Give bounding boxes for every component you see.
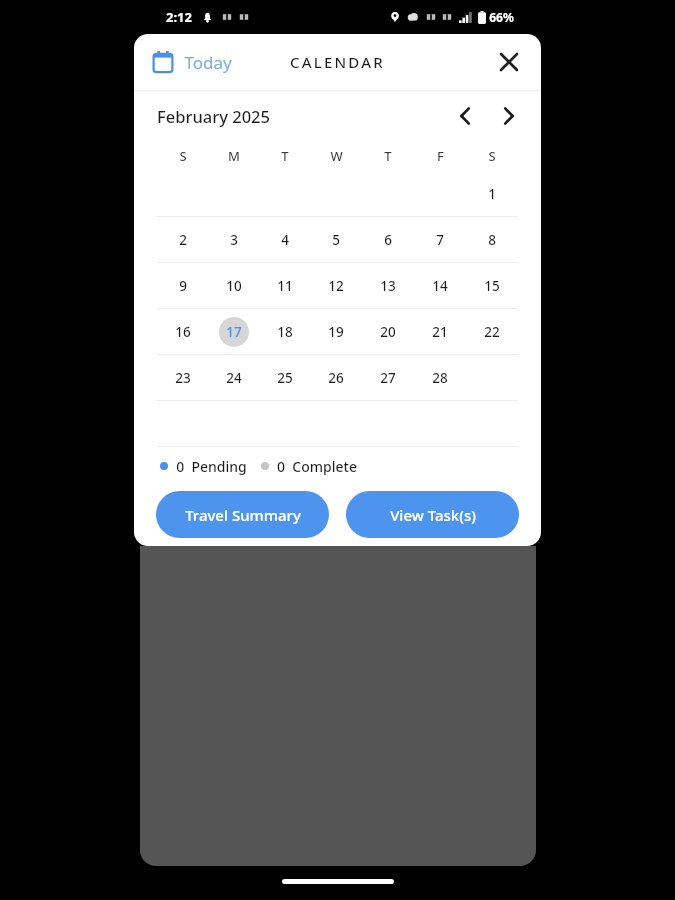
button[interactable]: 8 (466, 217, 518, 262)
staticText: 2 (179, 231, 187, 249)
staticText: 1 (488, 185, 496, 203)
button[interactable]: 2 (157, 217, 208, 262)
button[interactable]: Previous month (447, 98, 483, 134)
button[interactable]: 11 (259, 263, 310, 308)
button[interactable]: View Task(s) (346, 491, 519, 538)
staticText: Today (184, 51, 232, 74)
button[interactable]: 21 (414, 309, 466, 354)
staticText: 9 (179, 277, 187, 295)
button[interactable]: 9 (157, 263, 208, 308)
staticText: February 2025 (157, 105, 270, 127)
staticText: 21 (432, 323, 448, 341)
staticText: T (281, 147, 289, 165)
button[interactable]: 14 (414, 263, 466, 308)
staticText: 25 (277, 369, 293, 387)
button[interactable]: 18 (259, 309, 310, 354)
button[interactable]: Today (143, 34, 241, 90)
staticText: 26 (328, 369, 344, 387)
staticText: 8 (488, 231, 496, 249)
button[interactable]: 1 (466, 171, 518, 216)
staticText: S (488, 147, 496, 165)
button[interactable]: 13 (362, 263, 414, 308)
staticText: F (437, 147, 444, 165)
staticText: 66% (489, 9, 514, 25)
staticText: 14 (432, 277, 448, 295)
staticText: 28 (432, 369, 448, 387)
staticText: 12 (328, 277, 344, 295)
staticText: T (384, 147, 392, 165)
staticText: W (330, 147, 343, 165)
button[interactable]: 19 (310, 309, 362, 354)
staticText: View Task(s) (390, 505, 476, 525)
button[interactable]: 7 (414, 217, 466, 262)
button[interactable]: 23 (157, 355, 208, 400)
staticText: 24 (226, 369, 242, 387)
staticText: 22 (484, 323, 500, 341)
staticText: 7 (436, 231, 444, 249)
staticText: 11 (277, 277, 293, 295)
staticText: 15 (484, 277, 500, 295)
button[interactable]: 26 (310, 355, 362, 400)
button[interactable]: 3 (208, 217, 259, 262)
button[interactable]: Close (487, 40, 531, 84)
button[interactable]: 15 (466, 263, 518, 308)
staticText: 27 (380, 369, 396, 387)
button[interactable]: 4 (259, 217, 310, 262)
staticText: 23 (175, 369, 191, 387)
staticText: Travel Summary (185, 505, 301, 525)
button[interactable]: 12 (310, 263, 362, 308)
staticText: 13 (380, 277, 396, 295)
button[interactable]: Travel Summary (156, 491, 329, 538)
staticText: S (179, 147, 187, 165)
staticText: 16 (175, 323, 191, 341)
button[interactable]: 16 (157, 309, 208, 354)
button[interactable]: 25 (259, 355, 310, 400)
staticText: 0 Complete (277, 457, 357, 476)
button[interactable]: 6 (362, 217, 414, 262)
staticText: 4 (281, 231, 289, 249)
button[interactable]: Next month (491, 98, 527, 134)
staticText: CALENDAR (290, 52, 385, 72)
button[interactable]: 22 (466, 309, 518, 354)
button[interactable]: 24 (208, 355, 259, 400)
staticText: 2:12 (166, 8, 192, 26)
staticText: 6 (384, 231, 392, 249)
staticText: 3 (230, 231, 238, 249)
staticText: 0 Pending (176, 457, 247, 476)
staticText: 17 (226, 323, 242, 341)
button[interactable]: 28 (414, 355, 466, 400)
staticText: M (228, 147, 240, 165)
button[interactable]: 5 (310, 217, 362, 262)
staticText: 18 (277, 323, 293, 341)
button[interactable]: 20 (362, 309, 414, 354)
button[interactable]: 10 (208, 263, 259, 308)
button[interactable]: 27 (362, 355, 414, 400)
staticText: 5 (332, 231, 340, 249)
staticText: 20 (380, 323, 396, 341)
staticText: 19 (328, 323, 344, 341)
staticText: 10 (226, 277, 242, 295)
button[interactable]: 17 (208, 309, 259, 354)
